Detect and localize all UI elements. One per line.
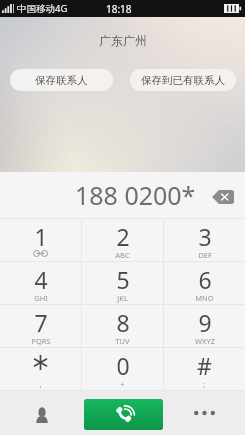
staticText: 3 xyxy=(198,221,212,252)
button[interactable]: 5 xyxy=(82,262,163,304)
button[interactable]: Backspace xyxy=(212,190,234,204)
staticText: JKL xyxy=(117,293,128,303)
staticText: + xyxy=(120,379,125,389)
staticText: ABC xyxy=(115,250,130,260)
staticText: 保存联系人 xyxy=(35,74,88,87)
staticText: 7 xyxy=(34,307,48,338)
button[interactable]: Contacts xyxy=(0,391,84,435)
staticText: 18:18 xyxy=(106,2,132,16)
staticText: 5 xyxy=(116,264,130,295)
staticText: 0 xyxy=(116,350,130,381)
button[interactable]: More options xyxy=(163,391,245,435)
staticText: 9 xyxy=(198,307,212,338)
button[interactable]: 9 xyxy=(164,305,245,347)
button[interactable]: 2 xyxy=(82,219,163,261)
button[interactable]: 8 xyxy=(82,305,163,347)
button[interactable]: 3 xyxy=(164,219,245,261)
staticText: 保存到已有联系人 xyxy=(141,74,225,87)
button[interactable]: 4 xyxy=(0,262,81,304)
staticText: 188 0200* xyxy=(75,178,196,212)
button[interactable]: 6 xyxy=(164,262,245,304)
staticText: DEF xyxy=(198,250,212,260)
staticText: 2 xyxy=(116,221,130,252)
staticText: TUV xyxy=(115,336,130,346)
button[interactable]: 7 xyxy=(0,305,81,347)
staticText: WXYZ xyxy=(195,336,215,346)
button[interactable]: 0 xyxy=(82,348,163,390)
staticText: # xyxy=(197,350,212,381)
staticText: 6 xyxy=(198,264,212,295)
staticText: PQRS xyxy=(31,336,51,346)
button[interactable]: 1 xyxy=(0,219,81,261)
button[interactable]: # xyxy=(164,348,245,390)
button[interactable]: Call xyxy=(84,399,163,430)
staticText: 广东广州 xyxy=(99,33,147,48)
staticText: 8 xyxy=(116,307,130,338)
staticText: GHI xyxy=(34,293,48,303)
staticText: 4 xyxy=(34,264,48,295)
button[interactable]: 保存联系人 xyxy=(10,69,113,91)
button[interactable]: 保存到已有联系人 xyxy=(130,69,236,91)
button[interactable]: , xyxy=(0,348,81,390)
staticText: ; xyxy=(203,379,206,389)
staticText: , xyxy=(39,379,42,389)
staticText: MNO xyxy=(195,293,214,303)
staticText: 中国移动4G xyxy=(17,2,68,15)
staticText: 1 xyxy=(34,221,48,252)
